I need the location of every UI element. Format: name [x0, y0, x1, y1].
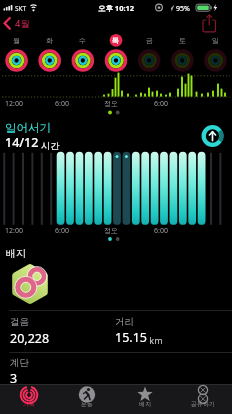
- staticText: 수: [66, 36, 99, 45]
- staticText: 목: [99, 36, 132, 45]
- staticText: 일: [199, 36, 232, 45]
- staticText: 거리: [115, 316, 134, 328]
- staticText: 20,228: [10, 330, 50, 347]
- staticText: 월: [0, 36, 33, 45]
- staticText: 14/12: [5, 134, 39, 151]
- staticText: km: [147, 334, 163, 346]
- staticText: SKT: [15, 4, 27, 13]
- staticText: 오후 10:12: [86, 3, 146, 13]
- staticText: 6:00: [154, 99, 168, 109]
- staticText: 계단: [10, 357, 29, 369]
- staticText: 기록: [0, 400, 58, 408]
- staticText: 토: [166, 36, 199, 45]
- staticText: 12:00: [5, 99, 23, 109]
- staticText: 12:00: [5, 226, 23, 236]
- staticText: 화: [33, 36, 66, 45]
- staticText: 95%: [176, 4, 190, 14]
- staticText: 공유하기: [174, 400, 232, 408]
- staticText: 3: [10, 370, 18, 387]
- staticText: 운동: [58, 400, 116, 408]
- staticText: 금: [133, 36, 166, 45]
- staticText: 일어서기: [5, 121, 51, 135]
- staticText: 배지: [116, 400, 174, 408]
- staticText: 4월: [15, 17, 30, 30]
- staticText: 걸음: [10, 316, 29, 328]
- staticText: 정오: [104, 99, 118, 108]
- staticText: 15.15: [115, 329, 147, 346]
- staticText: 시간: [39, 139, 60, 151]
- staticText: 6:00: [154, 226, 168, 236]
- staticText: 6:00: [55, 226, 69, 236]
- staticText: 6:00: [55, 99, 69, 109]
- staticText: 정오: [104, 226, 118, 235]
- staticText: 배지: [6, 247, 26, 260]
